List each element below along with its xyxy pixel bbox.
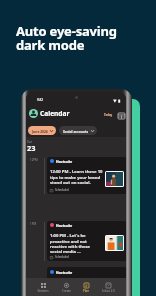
staticText: Hootsuite bbox=[56, 159, 73, 163]
staticText: Create bbox=[62, 289, 71, 293]
button[interactable]: June 2024 bbox=[28, 126, 56, 135]
staticText: Auto eye-saving dark mode bbox=[16, 22, 117, 54]
staticText: Hootsuite bbox=[56, 270, 73, 274]
staticText: 12PM bbox=[30, 158, 38, 162]
staticText: Inbox 2.0 bbox=[102, 289, 115, 293]
staticText: 23 bbox=[27, 143, 36, 153]
staticText: 1:00 PM - Let's be proactive and not rea… bbox=[50, 233, 103, 254]
staticText: Calendar bbox=[40, 109, 70, 118]
button[interactable]: Plan bbox=[82, 282, 90, 294]
staticText: 9:32 bbox=[37, 98, 43, 102]
staticText: Social accounts bbox=[63, 129, 89, 133]
button[interactable]: Social accounts bbox=[59, 126, 97, 135]
staticText: Scheduled bbox=[55, 188, 69, 192]
button[interactable]: Streams bbox=[36, 282, 50, 294]
staticText: Scheduled bbox=[55, 255, 69, 259]
staticText: Tue bbox=[27, 140, 32, 144]
button[interactable]: Hootsuite bbox=[47, 267, 126, 283]
staticText: Today bbox=[104, 113, 113, 117]
button[interactable]: Inbox 2.0 bbox=[101, 282, 116, 294]
staticText: Streams bbox=[37, 289, 49, 293]
button[interactable]: Today bbox=[104, 113, 113, 117]
button[interactable]: Switch calendar view bbox=[118, 112, 125, 119]
staticText: Plan bbox=[83, 289, 89, 293]
button[interactable]: Hootsuite bbox=[47, 157, 126, 194]
staticText: June 2024 bbox=[32, 129, 48, 133]
staticText: 1PM bbox=[30, 222, 37, 226]
staticText: 12:00 PM - Learn these 10 tips to make y… bbox=[50, 169, 103, 185]
button[interactable]: Hootsuite bbox=[47, 221, 126, 261]
staticText: Hootsuite bbox=[56, 223, 73, 227]
button[interactable]: Create bbox=[61, 282, 72, 294]
